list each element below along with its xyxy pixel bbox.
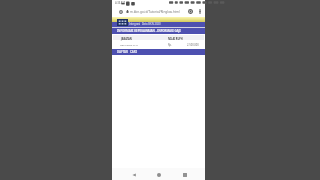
staticText: m.bkn.go.id/Tutorial/Ringkas.html [130, 10, 180, 14]
button[interactable]: DAFTAR [117, 50, 129, 54]
button[interactable]: More options [196, 8, 203, 15]
staticText: INFORMASI KEPEGAWAIAN - INFORMASI GAJI [117, 29, 181, 33]
staticText: NILAI RUPH [168, 37, 183, 40]
button[interactable]: Back [129, 170, 138, 179]
staticText: CARI [130, 50, 137, 54]
staticText: Rp. [168, 43, 172, 47]
button[interactable]: CARI [130, 50, 137, 54]
staticText: JABATAN [121, 37, 132, 40]
button[interactable]: Recent apps [180, 170, 189, 179]
button[interactable]: Site logo [117, 19, 128, 26]
button[interactable]: Reload page [117, 8, 124, 15]
staticText: 4:33 AM [115, 1, 125, 5]
button[interactable]: Site information [187, 8, 194, 15]
staticText: DAFTAR [117, 50, 129, 54]
button[interactable]: Home [154, 170, 163, 179]
staticText: Integrasi Data BKN 2020 [129, 22, 161, 26]
staticText: 2.500.000 [187, 43, 199, 47]
staticText: Gaji Pokok PNS [120, 43, 138, 46]
